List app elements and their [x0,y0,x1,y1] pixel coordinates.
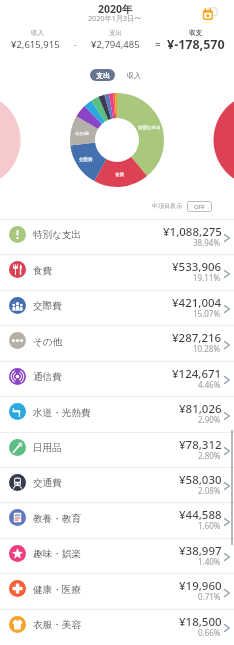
button[interactable]: その他 [0,325,234,361]
staticText: 交通費 [33,477,62,489]
staticText: 水道・光熱費 [33,407,91,419]
staticText: 交際費 [79,157,93,163]
button[interactable]: 衣服・美容 [0,609,234,644]
staticText: 日用品 [33,442,62,454]
button[interactable]: 通信費 [0,361,234,396]
staticText: 0.71% [198,591,221,602]
staticText: ¥421,004 [172,295,222,311]
staticText: 2020年 [98,2,133,16]
staticText: その他 [33,336,63,348]
staticText: 10.28% [193,343,221,354]
button[interactable]: 交際費 [0,290,234,325]
staticText: ¥18,500 [179,614,222,630]
button[interactable]: 特別な支出 [0,219,234,254]
button[interactable]: 収入 [125,69,143,81]
staticText: ¥38,997 [179,543,222,559]
staticText: 支出 [96,71,110,80]
staticText: ¥287,216 [172,330,222,346]
staticText: OFF [194,203,205,211]
staticText: その他 [75,131,89,137]
staticText: 特別な支出 [33,229,82,241]
staticText: ¥124,671 [172,366,222,382]
button[interactable]: 食費 [0,254,234,290]
staticText: 健康・医療 [33,584,81,596]
staticText: 趣味・娯楽 [33,548,81,560]
button[interactable]: 日用品 [0,432,234,467]
staticText: 19.11% [193,272,221,283]
staticText: 収支 [189,29,202,37]
staticText: 通信費 [33,371,62,383]
staticText: 2.90% [198,414,221,425]
button[interactable]: 趣味・娯楽 [0,538,234,573]
staticText: 支出 [109,29,122,37]
staticText: 38.94% [193,237,221,248]
staticText: ¥1,088,275 [163,224,222,240]
staticText: 衣服・美容 [33,619,81,631]
button[interactable]: 健康・医療 [0,573,234,609]
staticText: ¥44,588 [179,507,222,523]
staticText: 特別な支出 [138,125,161,131]
staticText: 1.40% [198,556,221,567]
staticText: 食費 [115,172,124,178]
button[interactable]: Select period [201,6,219,24]
staticText: 2.08% [198,485,221,496]
staticText: ¥-178,570 [167,36,225,53]
staticText: 収入 [31,29,44,37]
staticText: - [74,38,77,50]
staticText: 4.46% [198,379,221,390]
staticText: 収入 [127,71,141,80]
button[interactable]: 交通費 [0,467,234,502]
staticText: ¥19,960 [179,578,222,594]
button[interactable]: 水道・光熱費 [0,396,234,432]
staticText: 教養・教育 [33,513,81,525]
staticText: ¥58,030 [179,472,222,488]
button[interactable]: 教養・教育 [0,502,234,538]
staticText: 中項目表示 [152,202,182,210]
staticText: ¥78,312 [179,437,222,453]
staticText: 食費 [33,265,53,277]
staticText: ¥2,794,485 [91,38,140,51]
button[interactable]: 支出 [90,69,115,81]
staticText: 2.80% [198,450,221,461]
staticText: 2020年1月3日〜 [88,13,142,23]
staticText: 1.60% [198,520,221,531]
staticText: = [155,37,161,51]
staticText: ¥2,615,915 [11,38,60,51]
staticText: ¥533,906 [172,259,222,275]
staticText: ¥81,026 [179,401,222,417]
button[interactable]: OFF [187,201,212,212]
staticText: 0.66% [198,627,221,638]
staticText: 15.07% [193,308,221,319]
staticText: 交際費 [33,300,62,312]
